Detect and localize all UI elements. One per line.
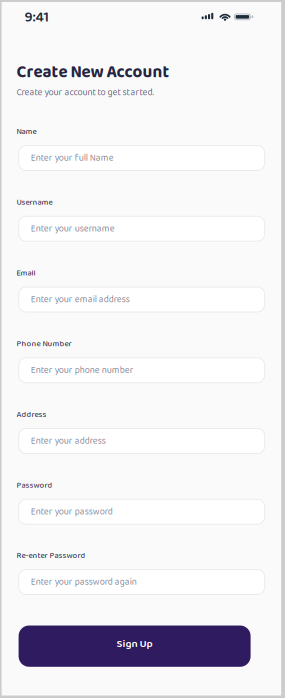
staticText: Enter your password — [31, 504, 113, 519]
staticText: Enter your password again — [31, 575, 137, 589]
button[interactable]: Enter your email address — [18, 286, 265, 312]
button[interactable]: Enter your phone number — [18, 357, 265, 383]
staticText: 9:41 — [24, 6, 48, 29]
button[interactable]: Enter your full Name — [18, 145, 265, 171]
staticText: Sign Up — [117, 635, 153, 653]
button[interactable]: Enter your username — [18, 216, 265, 242]
staticText: Create New Account — [17, 59, 170, 86]
staticText: Enter your username — [31, 221, 115, 236]
button[interactable]: Enter your password again — [18, 569, 265, 595]
button[interactable]: Sign Up — [19, 625, 251, 667]
staticText: Re-enter Password — [17, 549, 86, 562]
button[interactable]: Enter your address — [18, 428, 265, 454]
staticText: Username — [17, 196, 53, 209]
staticText: Create your account to get started. — [17, 85, 154, 100]
staticText: Phone Number — [17, 337, 72, 351]
staticText: Enter your email address — [31, 292, 130, 307]
button[interactable]: Enter your password — [18, 499, 265, 525]
staticText: Enter your phone number — [31, 363, 134, 378]
staticText: Address — [17, 408, 47, 421]
staticText: Enter your full Name — [31, 151, 114, 165]
staticText: Enter your address — [31, 434, 106, 448]
staticText: Password — [17, 479, 53, 492]
staticText: Name — [17, 125, 37, 138]
staticText: Email — [17, 267, 36, 280]
